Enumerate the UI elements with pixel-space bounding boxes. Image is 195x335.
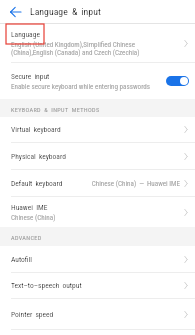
- staticText: Autofill: [11, 255, 32, 264]
- button[interactable]: Secure input: [0, 63, 195, 99]
- staticText: Chinese (China): [11, 213, 56, 221]
- button[interactable]: Secure input toggle: [166, 76, 189, 86]
- staticText: Language: [11, 30, 40, 39]
- staticText: English (United Kingdom),Simplified Chin…: [11, 40, 140, 57]
- button[interactable]: Autofill: [0, 246, 195, 272]
- staticText: Default keyboard: [11, 179, 63, 188]
- staticText: KEYBOARD & INPUT METHODS: [11, 106, 100, 113]
- staticText: Pointer speed: [11, 310, 54, 319]
- button[interactable]: Back: [0, 0, 30, 23]
- button[interactable]: Language: [0, 24, 195, 62]
- button[interactable]: Pointer speed: [0, 299, 195, 329]
- staticText: Text–to–speech output: [11, 281, 82, 290]
- staticText: Virtual keyboard: [11, 125, 61, 134]
- button[interactable]: Text–to–speech output: [0, 273, 195, 298]
- button[interactable]: Physical keyboard: [0, 143, 195, 169]
- staticText: Language & input: [30, 6, 101, 17]
- button[interactable]: Virtual keyboard: [0, 117, 195, 142]
- staticText: ADVANCED: [11, 234, 42, 241]
- staticText: Physical keyboard: [11, 152, 66, 161]
- button[interactable]: Huawei IME: [0, 197, 195, 227]
- button[interactable]: Default keyboard: [0, 170, 195, 196]
- staticText: Chinese (China) — Huawei IME: [91, 179, 180, 187]
- staticText: Huawei IME: [11, 203, 48, 212]
- staticText: Enable secure keyboard while entering pa…: [11, 82, 150, 90]
- staticText: Secure input: [11, 72, 50, 81]
